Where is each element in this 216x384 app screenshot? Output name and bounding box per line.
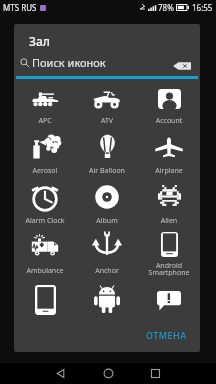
staticText: MTS RUS (3, 2, 37, 13)
button[interactable]: Home (95, 363, 121, 384)
button[interactable]: Alien (138, 176, 200, 226)
button[interactable]: Anchor (76, 226, 138, 276)
button[interactable]: Поиск иконок (17, 53, 197, 72)
staticText: Alarm Clock (14, 216, 76, 226)
button[interactable]: Ambulance (14, 226, 76, 276)
button[interactable]: Aerosol (14, 126, 76, 176)
button[interactable]: Recents (142, 363, 168, 384)
staticText: Account (138, 116, 200, 126)
staticText: Alien (138, 216, 200, 226)
staticText: Android Smartphone (138, 261, 200, 276)
button[interactable] (76, 276, 138, 318)
staticText: Anchor (76, 266, 138, 276)
button[interactable]: ОТМЕНА (133, 324, 200, 346)
staticText: Air Balloon (76, 166, 138, 176)
staticText: Ambulance (14, 266, 76, 276)
staticText: Airplane (138, 166, 200, 176)
staticText: APC (14, 116, 76, 126)
button[interactable]: Album (76, 176, 138, 226)
button[interactable]: ATV (76, 76, 138, 126)
staticText: Album (76, 216, 138, 226)
button[interactable]: Air Balloon (76, 126, 138, 176)
button[interactable] (14, 276, 76, 318)
button[interactable]: APC (14, 76, 76, 126)
staticText: 16:55 (192, 2, 213, 13)
staticText: Aerosol (14, 166, 76, 176)
staticText: ОТМЕНА (146, 329, 187, 341)
button[interactable]: Android Smartphone (138, 226, 200, 276)
button[interactable] (138, 276, 200, 318)
staticText: 78% (158, 2, 174, 13)
button[interactable]: Account (138, 76, 200, 126)
button[interactable]: Airplane (138, 126, 200, 176)
staticText: Зал (29, 33, 50, 49)
staticText: Поиск иконок (32, 55, 106, 70)
staticText: ATV (76, 116, 138, 126)
button[interactable]: Back (47, 363, 73, 384)
button[interactable]: Alarm Clock (14, 176, 76, 226)
